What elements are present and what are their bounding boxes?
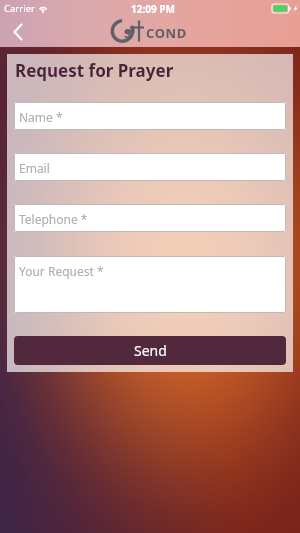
button[interactable]: Your Request *	[14, 256, 286, 313]
staticText: Your Request *	[19, 263, 104, 279]
staticText: Name *	[19, 109, 63, 125]
staticText: Email	[19, 160, 50, 176]
button[interactable]: Name *	[14, 102, 286, 130]
staticText: Telephone *	[19, 211, 88, 227]
button[interactable]: Send	[14, 336, 286, 365]
button[interactable]: Email	[14, 153, 286, 181]
staticText: Carrier	[4, 2, 35, 15]
staticText: Request for Prayer	[15, 59, 174, 82]
staticText: S	[124, 24, 132, 42]
staticText: 12:09 PM	[131, 2, 175, 16]
button[interactable]: Back	[4, 18, 32, 46]
staticText: COND	[146, 24, 187, 42]
button[interactable]: Telephone *	[14, 204, 286, 232]
staticText: Send	[134, 341, 167, 360]
